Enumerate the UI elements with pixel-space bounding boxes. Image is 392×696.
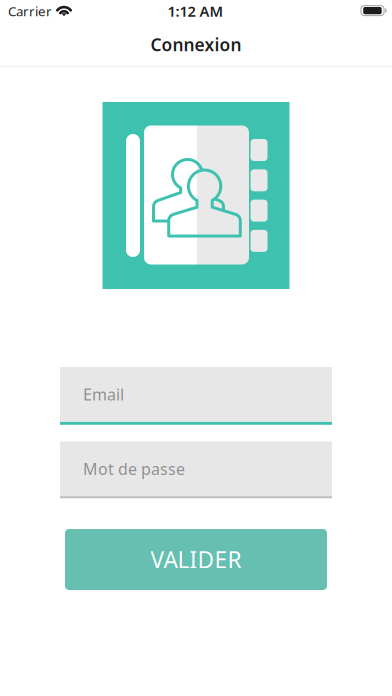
staticText: Email xyxy=(83,384,124,405)
staticText: 1:12 AM xyxy=(167,1,223,21)
button[interactable]: Mot de passe xyxy=(60,441,332,498)
staticText: Connexion xyxy=(150,33,241,56)
staticText: Mot de passe xyxy=(83,458,185,479)
button[interactable]: VALIDER xyxy=(65,529,327,590)
staticText: VALIDER xyxy=(150,544,241,574)
button[interactable]: Email xyxy=(60,367,332,425)
staticText: Carrier xyxy=(8,2,52,20)
